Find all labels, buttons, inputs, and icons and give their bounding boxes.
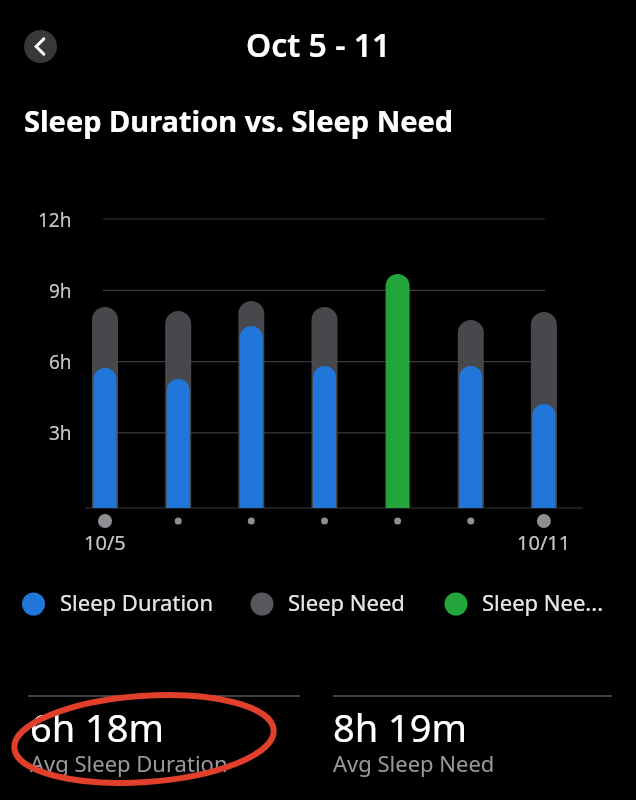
staticText: Sleep Need: [288, 587, 405, 617]
staticText: Sleep Duration: [60, 587, 213, 617]
staticText: 9h: [49, 278, 72, 304]
staticText: 10/5: [84, 529, 126, 556]
staticText: 3h: [49, 420, 72, 446]
staticText: 6h 18m: [30, 701, 165, 753]
button[interactable]: [24, 30, 57, 63]
staticText: Avg Sleep Duration: [30, 748, 228, 778]
staticText: Sleep Duration vs. Sleep Need: [24, 101, 454, 140]
staticText: Oct 5 - 11: [246, 23, 391, 67]
staticText: Sleep Nee...: [482, 587, 604, 617]
staticText: 12h: [38, 207, 72, 233]
staticText: 10/11: [517, 529, 571, 556]
staticText: 6h: [49, 349, 72, 375]
staticText: 8h 19m: [333, 701, 468, 753]
staticText: Avg Sleep Need: [333, 748, 495, 778]
